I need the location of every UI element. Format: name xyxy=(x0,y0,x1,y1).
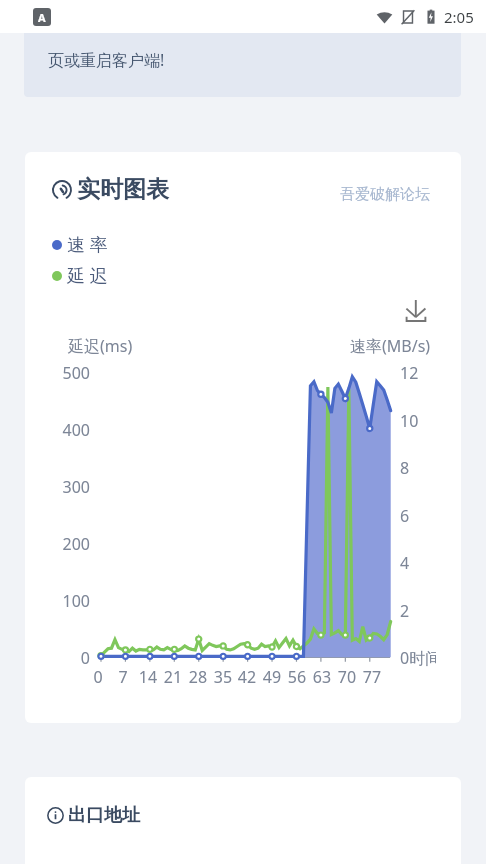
staticText: 0 xyxy=(45,647,90,669)
staticText: 吾爱破解论坛 xyxy=(340,185,430,204)
staticText: 速率(MB/s) xyxy=(350,335,431,357)
staticText: 速 率 xyxy=(67,232,108,257)
staticText: 35 xyxy=(208,666,238,688)
staticText: 12 xyxy=(400,362,419,384)
staticText: 2 xyxy=(400,600,410,622)
staticText: 200 xyxy=(45,533,90,555)
button[interactable]: Download xyxy=(398,293,434,329)
staticText: 2:05 xyxy=(444,7,474,27)
staticText: A xyxy=(38,10,46,25)
staticText: 14 xyxy=(133,666,163,688)
button[interactable]: 速 率 xyxy=(52,232,108,257)
staticText: 10 xyxy=(400,410,419,432)
staticText: 延迟(ms) xyxy=(68,335,133,357)
staticText: 0时间 xyxy=(400,647,436,669)
staticText: 8 xyxy=(400,457,410,479)
button[interactable]: 延 迟 xyxy=(52,263,108,288)
staticText: 100 xyxy=(45,590,90,612)
staticText: 28 xyxy=(183,666,213,688)
staticText: 42 xyxy=(232,666,262,688)
staticText: 延 迟 xyxy=(67,263,108,288)
staticText: 实时图表 xyxy=(77,175,169,204)
staticText: 4 xyxy=(400,552,410,574)
staticText: 56 xyxy=(282,666,312,688)
staticText: 400 xyxy=(45,419,90,441)
button[interactable]: 吾爱破解论坛 xyxy=(338,183,432,206)
staticText: 0 xyxy=(83,666,113,688)
staticText: 页或重启客户端! xyxy=(48,49,165,71)
staticText: 7 xyxy=(108,666,138,688)
staticText: 77 xyxy=(357,666,387,688)
staticText: 49 xyxy=(257,666,287,688)
staticText: 70 xyxy=(332,666,362,688)
staticText: 500 xyxy=(45,362,90,384)
staticText: 21 xyxy=(158,666,188,688)
staticText: 63 xyxy=(307,666,337,688)
staticText: 6 xyxy=(400,505,410,527)
staticText: 300 xyxy=(45,476,90,498)
staticText: 出口地址 xyxy=(68,804,140,827)
